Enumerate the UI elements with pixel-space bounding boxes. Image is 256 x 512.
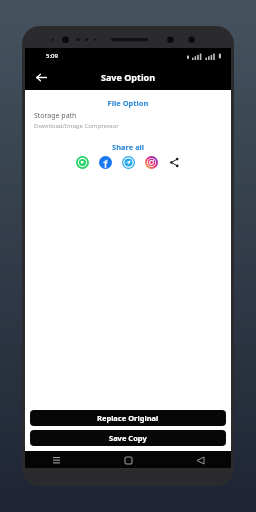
- button[interactable]: Home: [121, 453, 135, 467]
- staticText: Download/Image Compressor: [34, 122, 119, 130]
- button[interactable]: Telegram: [121, 155, 136, 170]
- staticText: File Option: [34, 98, 222, 108]
- button[interactable]: Save Copy: [30, 430, 226, 446]
- button[interactable]: Back: [31, 67, 51, 87]
- staticText: Save Copy: [109, 433, 147, 443]
- button[interactable]: Back: [193, 453, 207, 467]
- staticText: Save Option: [101, 71, 156, 83]
- staticText: Storage path: [34, 111, 77, 121]
- button[interactable]: Instagram: [144, 155, 159, 170]
- button[interactable]: Replace Original: [30, 410, 226, 426]
- button[interactable]: Facebook: [98, 155, 113, 170]
- button[interactable]: Share: [167, 155, 182, 170]
- staticText: 5:09: [46, 52, 58, 60]
- button[interactable]: WhatsApp: [75, 155, 90, 170]
- button[interactable]: File Option: [29, 95, 227, 133]
- staticText: Replace Original: [97, 413, 159, 423]
- button[interactable]: Recents: [49, 453, 63, 467]
- staticText: Share all: [112, 142, 145, 152]
